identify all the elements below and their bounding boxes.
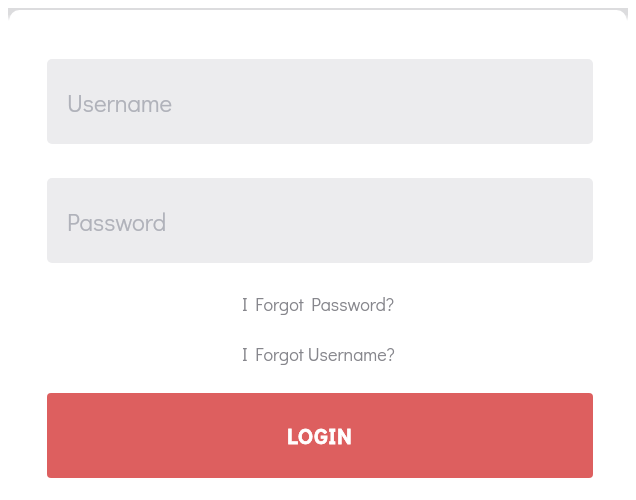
staticText: I Forgot Password? xyxy=(242,292,395,316)
button[interactable]: I Forgot Password? xyxy=(236,290,401,318)
staticText: LOGIN xyxy=(287,422,353,450)
staticText: LOGIN xyxy=(287,422,353,450)
staticText: Password xyxy=(67,206,167,237)
staticText: Username xyxy=(67,87,173,118)
staticText: I Forgot Username? xyxy=(242,342,395,366)
button[interactable]: Username xyxy=(47,59,593,144)
button[interactable]: LOGIN xyxy=(47,393,593,478)
button[interactable]: Password xyxy=(47,178,593,263)
button[interactable]: I Forgot Username? xyxy=(236,340,401,368)
